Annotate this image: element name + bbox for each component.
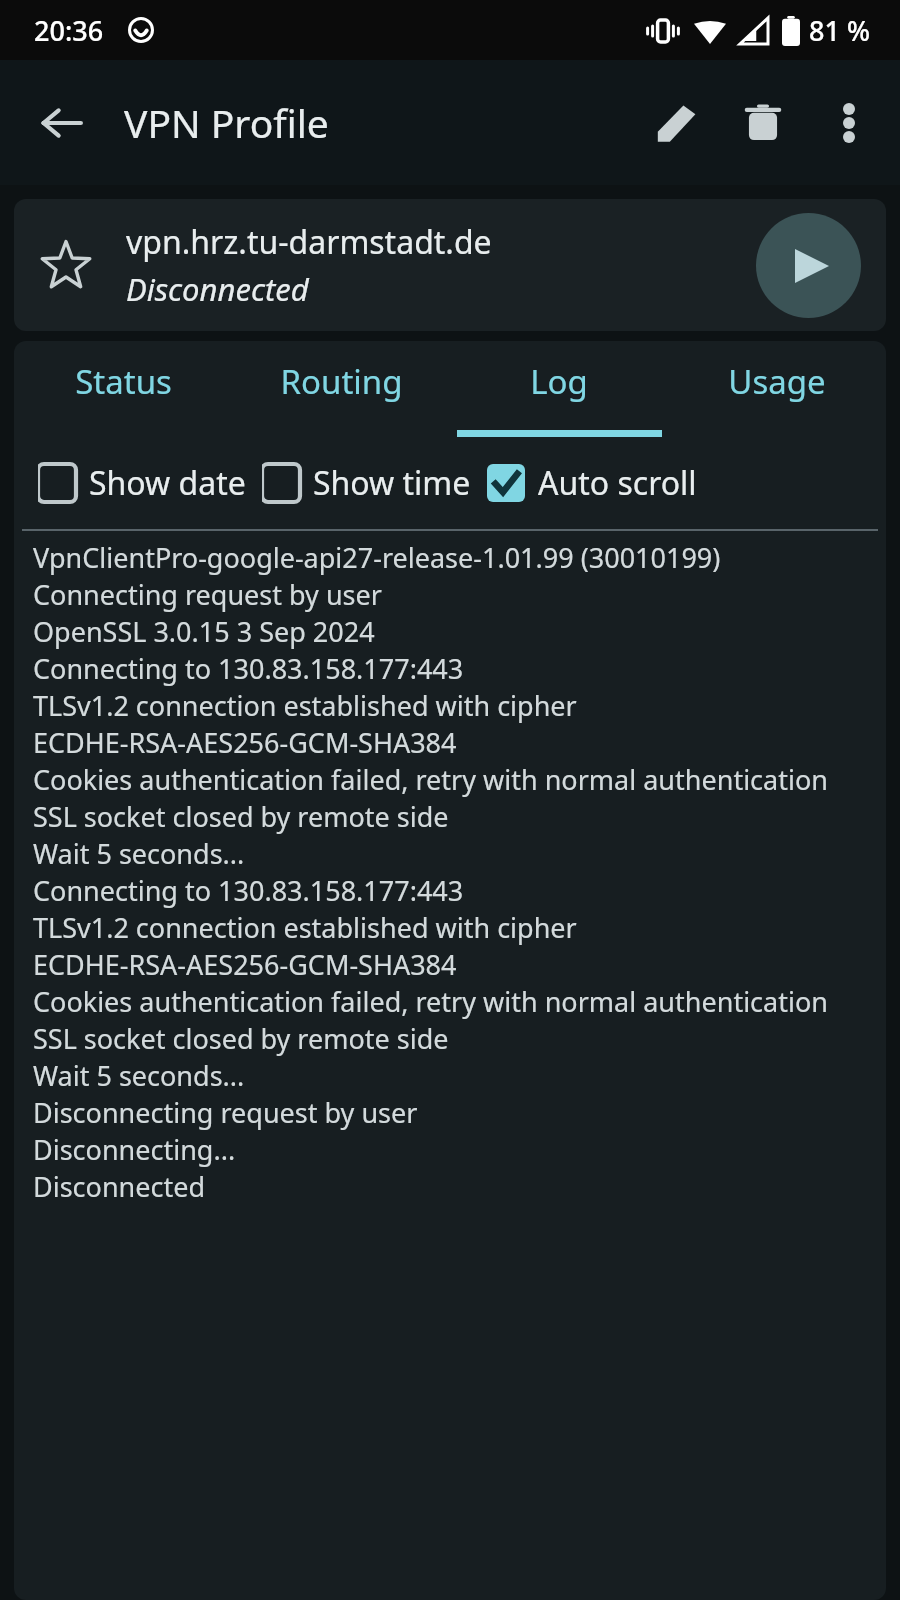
button[interactable]: Usage (668, 341, 886, 437)
button[interactable]: Edit (634, 80, 720, 166)
staticText: Connecting to 130.83.158.177:443 (33, 650, 464, 687)
button[interactable]: Log (450, 341, 668, 437)
staticText: Cookies authentication failed, retry wit… (33, 983, 828, 1020)
button[interactable]: Favourite (14, 199, 886, 331)
staticText: Connecting to 130.83.158.177:443 (33, 872, 464, 909)
button[interactable]: Favourite (30, 229, 102, 301)
staticText: Wait 5 seconds... (33, 835, 245, 872)
button[interactable]: Auto scroll (487, 455, 697, 511)
staticText: Wait 5 seconds... (33, 1057, 245, 1094)
staticText: Cookies authentication failed, retry wit… (33, 761, 828, 798)
staticText: VpnClientPro-google-api27-release-1.01.9… (33, 539, 721, 576)
staticText: Disconnected (33, 1168, 206, 1205)
staticText: SSL socket closed by remote side (33, 1020, 449, 1057)
staticText: 81 % (809, 12, 870, 49)
button[interactable]: Routing (232, 341, 450, 437)
staticText: Log (530, 359, 588, 404)
button[interactable]: Show time (262, 455, 471, 511)
staticText: Disconnected (126, 268, 309, 310)
staticText: Usage (728, 359, 826, 404)
staticText: Show time (313, 461, 471, 505)
staticText: ECDHE-RSA-AES256-GCM-SHA384 (33, 724, 457, 761)
button[interactable]: Show date (38, 455, 246, 511)
button[interactable]: Connect (756, 213, 861, 318)
button[interactable]: Delete (720, 80, 806, 166)
staticText: Disconnecting request by user (33, 1094, 418, 1131)
staticText: ECDHE-RSA-AES256-GCM-SHA384 (33, 946, 457, 983)
staticText: Show date (89, 461, 246, 505)
staticText: VPN Profile (124, 96, 329, 149)
staticText: Auto scroll (538, 461, 697, 505)
staticText: OpenSSL 3.0.15 3 Sep 2024 (33, 613, 375, 650)
staticText: Status (75, 359, 172, 404)
staticText: Disconnecting... (33, 1131, 236, 1168)
button[interactable]: More options (806, 80, 892, 166)
staticText: Connecting request by user (33, 576, 382, 613)
staticText: Routing (280, 359, 403, 404)
staticText: TLSv1.2 connection established with ciph… (33, 909, 577, 946)
staticText: TLSv1.2 connection established with ciph… (33, 687, 577, 724)
button[interactable]: Back (24, 85, 100, 161)
staticText: vpn.hrz.tu-darmstadt.de (126, 220, 492, 264)
staticText: 20:36 (34, 12, 104, 49)
button[interactable]: Status (14, 341, 232, 437)
staticText: SSL socket closed by remote side (33, 798, 449, 835)
